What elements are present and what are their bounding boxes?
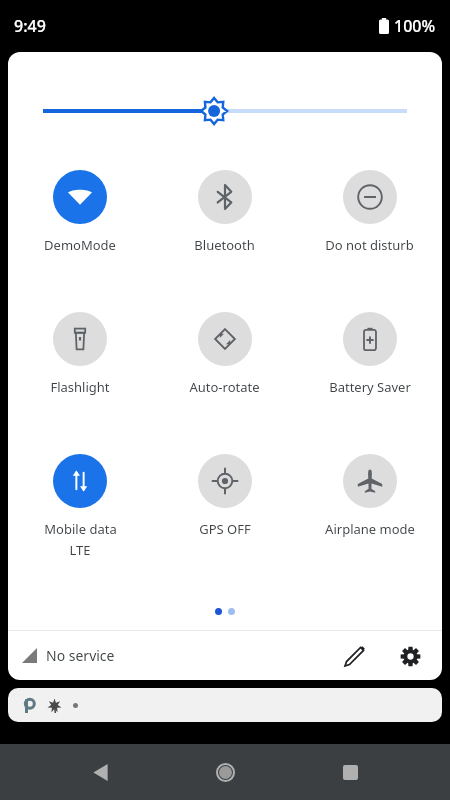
- button[interactable]: Airplane mode: [297, 444, 442, 592]
- button[interactable]: Home: [202, 749, 248, 795]
- button[interactable]: Battery Saver: [297, 302, 442, 444]
- button[interactable]: DemoMode: [8, 160, 152, 302]
- staticText: Do not disturb: [325, 236, 414, 254]
- staticText: LTE: [69, 541, 91, 559]
- staticText: Airplane mode: [325, 520, 415, 538]
- staticText: Battery Saver: [329, 378, 411, 396]
- staticText: Flashlight: [50, 378, 110, 396]
- button[interactable]: Brightness: [8, 52, 442, 160]
- button[interactable]: Settings: [390, 636, 430, 676]
- staticText: Bluetooth: [194, 236, 255, 254]
- button[interactable]: Recent apps: [327, 749, 373, 795]
- staticText: DemoMode: [44, 236, 116, 254]
- button[interactable]: Flashlight: [8, 302, 152, 444]
- staticText: 9:49: [14, 15, 46, 37]
- button[interactable]: Auto-rotate: [152, 302, 297, 444]
- button[interactable]: No service: [22, 646, 115, 665]
- button[interactable]: Bluetooth: [152, 160, 297, 302]
- button[interactable]: Back: [77, 749, 123, 795]
- staticText: No service: [46, 646, 115, 665]
- button[interactable]: Mobile data: [8, 444, 152, 592]
- staticText: Mobile data: [44, 520, 117, 538]
- button[interactable]: GPS OFF: [152, 444, 297, 592]
- button[interactable]: Do not disturb: [297, 160, 442, 302]
- button[interactable]: [8, 688, 442, 722]
- staticText: Auto-rotate: [189, 378, 260, 396]
- staticText: 100%: [394, 15, 436, 37]
- staticText: GPS OFF: [199, 520, 251, 538]
- button[interactable]: Edit tiles: [334, 636, 374, 676]
